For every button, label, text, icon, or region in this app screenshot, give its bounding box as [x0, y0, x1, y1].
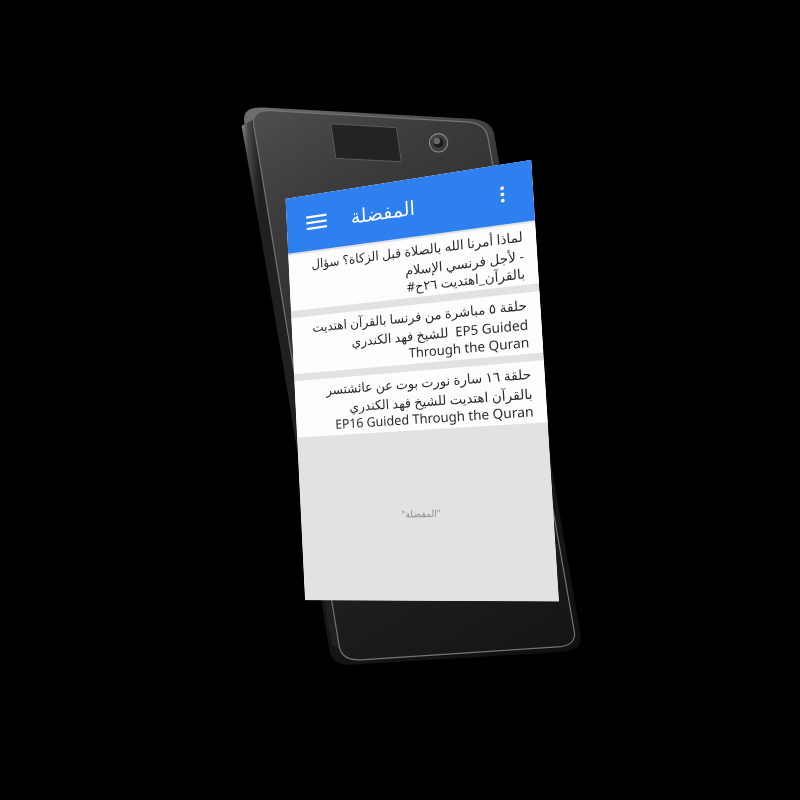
- staticText: حلقة ٥ مباشرة من فرنسا بالقرآن اهتديت لل…: [303, 296, 529, 354]
- button[interactable]: حلقة ٥ مباشرة من فرنسا بالقرآن اهتديت لل…: [291, 291, 543, 374]
- button[interactable]: Open navigation drawer: [293, 194, 340, 249]
- button[interactable]: لماذا أمرنا الله بالصلاة قبل الزكاة؟ سؤا…: [288, 222, 539, 311]
- staticText: EP16 Guided Through the Quran: [307, 402, 534, 435]
- button[interactable]: حلقة ١٦ سارة نورت بوت عن عائشتسر بالقرآن…: [294, 360, 548, 437]
- staticText: Through the Quran: [304, 333, 530, 371]
- staticText: "المفضلة": [301, 502, 554, 522]
- staticText: المفضلة: [350, 196, 416, 228]
- staticText: حلقة ١٦ سارة نورت بوت عن عائشتسر بالقرآن…: [306, 365, 533, 417]
- button[interactable]: More options: [475, 165, 530, 224]
- staticText: #بالقرآن_اهتديت ٢٦ح: [301, 264, 525, 308]
- staticText: لماذا أمرنا الله بالصلاة قبل الزكاة؟ سؤا…: [299, 227, 524, 291]
